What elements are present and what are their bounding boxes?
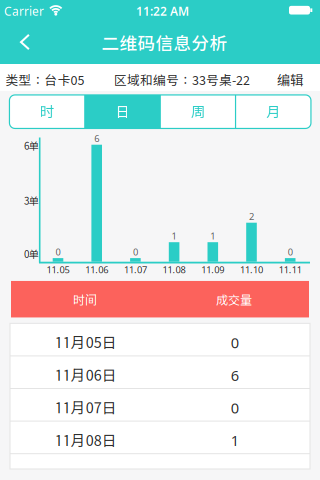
staticText: 11月06日	[55, 367, 117, 384]
staticText: 11.06	[85, 263, 108, 276]
button[interactable]: 周	[160, 95, 236, 128]
staticText: 11.08	[163, 263, 186, 276]
staticText: 6	[231, 365, 239, 385]
staticText: 0	[288, 246, 293, 258]
staticText: 时	[40, 103, 54, 120]
button[interactable]	[10, 27, 34, 57]
staticText: 11月08日	[55, 432, 117, 449]
staticText: Carrier	[4, 3, 44, 19]
staticText: 2	[249, 210, 254, 223]
staticText: 0	[231, 333, 239, 352]
staticText: 二维码信息分析	[101, 33, 227, 54]
staticText: 编辑	[277, 72, 303, 88]
staticText: 1	[210, 230, 215, 242]
button[interactable]: 时	[9, 95, 85, 128]
staticText: 11:22 AM	[136, 3, 189, 19]
staticText: 日	[115, 103, 129, 120]
staticText: 成交量	[216, 293, 252, 307]
staticText: 类型：台卡05	[5, 73, 84, 88]
staticText: 0	[133, 246, 138, 258]
staticText: 1	[172, 230, 177, 242]
staticText: 11月07日	[55, 399, 117, 416]
staticText: 0单	[24, 248, 39, 260]
staticText: 6	[94, 132, 99, 145]
button[interactable]: 编辑	[277, 72, 303, 88]
staticText: 3单	[24, 195, 39, 207]
staticText: 0	[55, 246, 60, 258]
staticText: 11.09	[201, 263, 224, 276]
staticText: 11.07	[124, 263, 147, 276]
button[interactable]: 日	[85, 95, 160, 128]
staticText: 周	[191, 103, 205, 120]
staticText: 区域和编号：33号桌-22	[114, 73, 250, 88]
staticText: 6单	[24, 140, 39, 152]
staticText: 11月05日	[55, 334, 117, 351]
staticText: 1	[231, 431, 239, 450]
staticText: 11.10	[240, 263, 263, 276]
staticText: 时间	[73, 293, 97, 307]
staticText: 11.11	[279, 263, 302, 276]
button[interactable]: 月	[236, 95, 311, 128]
staticText: 11.05	[46, 263, 69, 276]
staticText: 0	[231, 398, 239, 418]
staticText: 月	[266, 103, 280, 120]
